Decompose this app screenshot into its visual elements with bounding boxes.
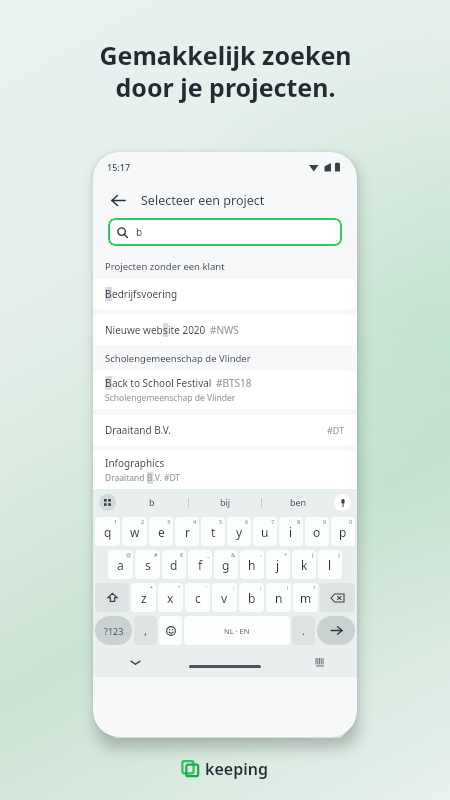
staticText: bij [220,496,231,508]
button[interactable]: Back [107,189,129,211]
button[interactable]: c [185,583,210,612]
staticText: ' [206,584,208,591]
button[interactable]: s [135,550,160,579]
button[interactable]: Toolbar [99,494,116,511]
staticText: ben [290,496,307,508]
staticText: u [261,524,269,540]
staticText: € [180,551,184,558]
button[interactable]: t [201,517,225,546]
staticText: e [158,524,165,540]
staticText: 0 [349,518,353,525]
button[interactable]: o [305,517,329,546]
staticText: Infographics [105,456,165,470]
button[interactable]: h [240,550,264,579]
staticText: o [313,524,321,540]
button[interactable]: e [149,517,173,546]
staticText: t [211,524,216,540]
button[interactable]: f [188,550,212,579]
staticText: Selecteer een project [141,192,265,209]
staticText: Scholengemeenschap de Vlinder [105,392,236,404]
staticText: & [231,551,236,558]
button[interactable]: p [331,517,355,546]
staticText: r [185,524,190,540]
button[interactable]: d [162,550,186,579]
staticText: ? [313,584,316,591]
staticText: n [275,590,283,606]
staticText: m [300,590,312,606]
button[interactable]: , [134,616,157,645]
button[interactable]: Emoji [159,616,182,645]
button[interactable]: Hide keyboard [127,654,143,670]
button[interactable]: . [292,616,315,645]
button[interactable]: j [266,550,290,579]
button[interactable]: g [214,550,238,579]
button[interactable]: ben [262,489,334,515]
button[interactable]: x [158,583,183,612]
staticText: w [130,524,140,540]
staticText: 5 [219,518,223,525]
button[interactable]: Shift [95,583,129,612]
staticText: #BTS18 [216,376,252,390]
staticText: s [163,323,168,337]
button[interactable]: Switch keyboard [313,655,327,669]
button[interactable]: u [253,517,277,546]
button[interactable]: y [227,517,251,546]
button[interactable]: Draaitand B.V. [105,415,345,445]
staticText: l [328,557,332,573]
staticText: NL · EN [224,626,250,636]
staticText: Scholengemeenschap de Vlinder [105,352,251,365]
button[interactable]: k [292,550,316,579]
button[interactable]: i [279,517,303,546]
button[interactable]: b [239,583,264,612]
staticText: 15:17 [107,161,131,173]
staticText: Projecten zonder een klant [105,260,225,273]
button[interactable]: Scholengemeenschap de Vlinder [105,345,357,371]
button[interactable]: Nieuwe web [105,315,345,345]
staticText: p [339,524,347,540]
button[interactable]: l [318,550,342,579]
button[interactable]: w [122,517,147,546]
button[interactable]: v [212,583,237,612]
button[interactable]: B [105,371,345,409]
button[interactable]: bij [189,489,261,515]
button[interactable]: r [175,517,199,546]
button[interactable]: z [131,583,156,612]
staticText: b [149,496,155,508]
button[interactable]: q [95,517,120,546]
staticText: # [154,551,158,558]
staticText: a [117,557,124,573]
button[interactable]: a [108,550,133,579]
staticText: . [302,623,305,638]
staticText: d [170,557,178,573]
staticText: b [136,225,143,239]
staticText: .V. #DT [153,472,181,484]
button[interactable]: Enter [317,616,355,645]
staticText: k [301,557,308,573]
button[interactable]: B [105,279,345,309]
staticText: 7 [271,518,275,525]
staticText: b [248,590,256,606]
button[interactable]: Infographics [105,451,345,489]
button[interactable]: b [116,489,188,515]
staticText: q [104,524,112,540]
button[interactable]: ?123 [95,616,132,645]
staticText: #NWS [210,323,239,337]
staticText: ) [338,551,340,558]
staticText: : [233,584,235,591]
staticText: B [147,472,153,484]
staticText: Draaitand B.V. [105,423,171,437]
button[interactable]: Voice input [334,494,351,511]
staticText: B [105,376,112,390]
staticText: Draaitand [105,472,147,484]
button[interactable]: m [293,583,318,612]
staticText: 1 [114,518,118,525]
button[interactable]: b [108,218,342,246]
staticText: " [178,584,181,591]
button[interactable]: Projecten zonder een klant [105,253,357,279]
staticText: ( [312,551,314,558]
button[interactable]: NL · EN [184,616,290,645]
button[interactable]: Backspace [320,583,355,612]
button[interactable]: n [266,583,291,612]
staticText: x [167,590,174,606]
staticText: _ [207,551,210,558]
